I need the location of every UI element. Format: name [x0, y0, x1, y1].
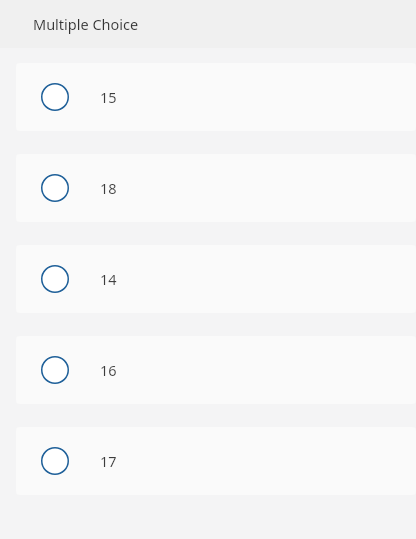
other: Select option 18 [41, 174, 69, 202]
other: Select option 14 [41, 265, 69, 293]
staticText: 18 [100, 178, 117, 198]
button[interactable]: Select option 16 [16, 336, 416, 404]
staticText: 15 [100, 87, 117, 107]
other: Select option 17 [41, 447, 69, 475]
staticText: 14 [100, 269, 117, 289]
button[interactable]: Select option 18 [16, 154, 416, 222]
staticText: 16 [100, 360, 117, 380]
staticText: 17 [100, 451, 117, 471]
other: Select option 15 [41, 83, 69, 111]
other: Select option 16 [41, 356, 69, 384]
staticText: Multiple Choice [33, 14, 139, 34]
button[interactable]: Select option 15 [16, 63, 416, 131]
button[interactable]: Select option 17 [16, 427, 416, 495]
button[interactable]: Select option 14 [16, 245, 416, 313]
